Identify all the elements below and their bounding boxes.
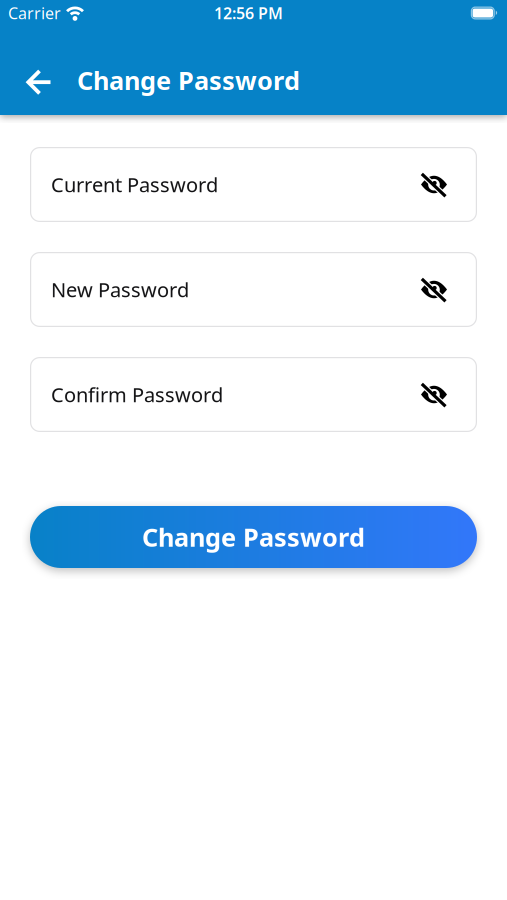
staticText: Current Password	[51, 171, 218, 198]
staticText: Confirm Password	[51, 381, 223, 408]
button[interactable]: Change Password	[30, 506, 477, 568]
button[interactable]: Show current password	[414, 161, 454, 207]
staticText: New Password	[51, 276, 189, 303]
staticText: 12:56 PM	[214, 2, 283, 24]
staticText: Carrier	[8, 2, 61, 24]
button[interactable]: Show new password	[414, 266, 454, 312]
staticText: Change Password	[142, 520, 365, 554]
button[interactable]: Show confirm password	[414, 371, 454, 417]
button[interactable]: Back	[27, 67, 51, 93]
staticText: Change Password	[77, 63, 300, 97]
